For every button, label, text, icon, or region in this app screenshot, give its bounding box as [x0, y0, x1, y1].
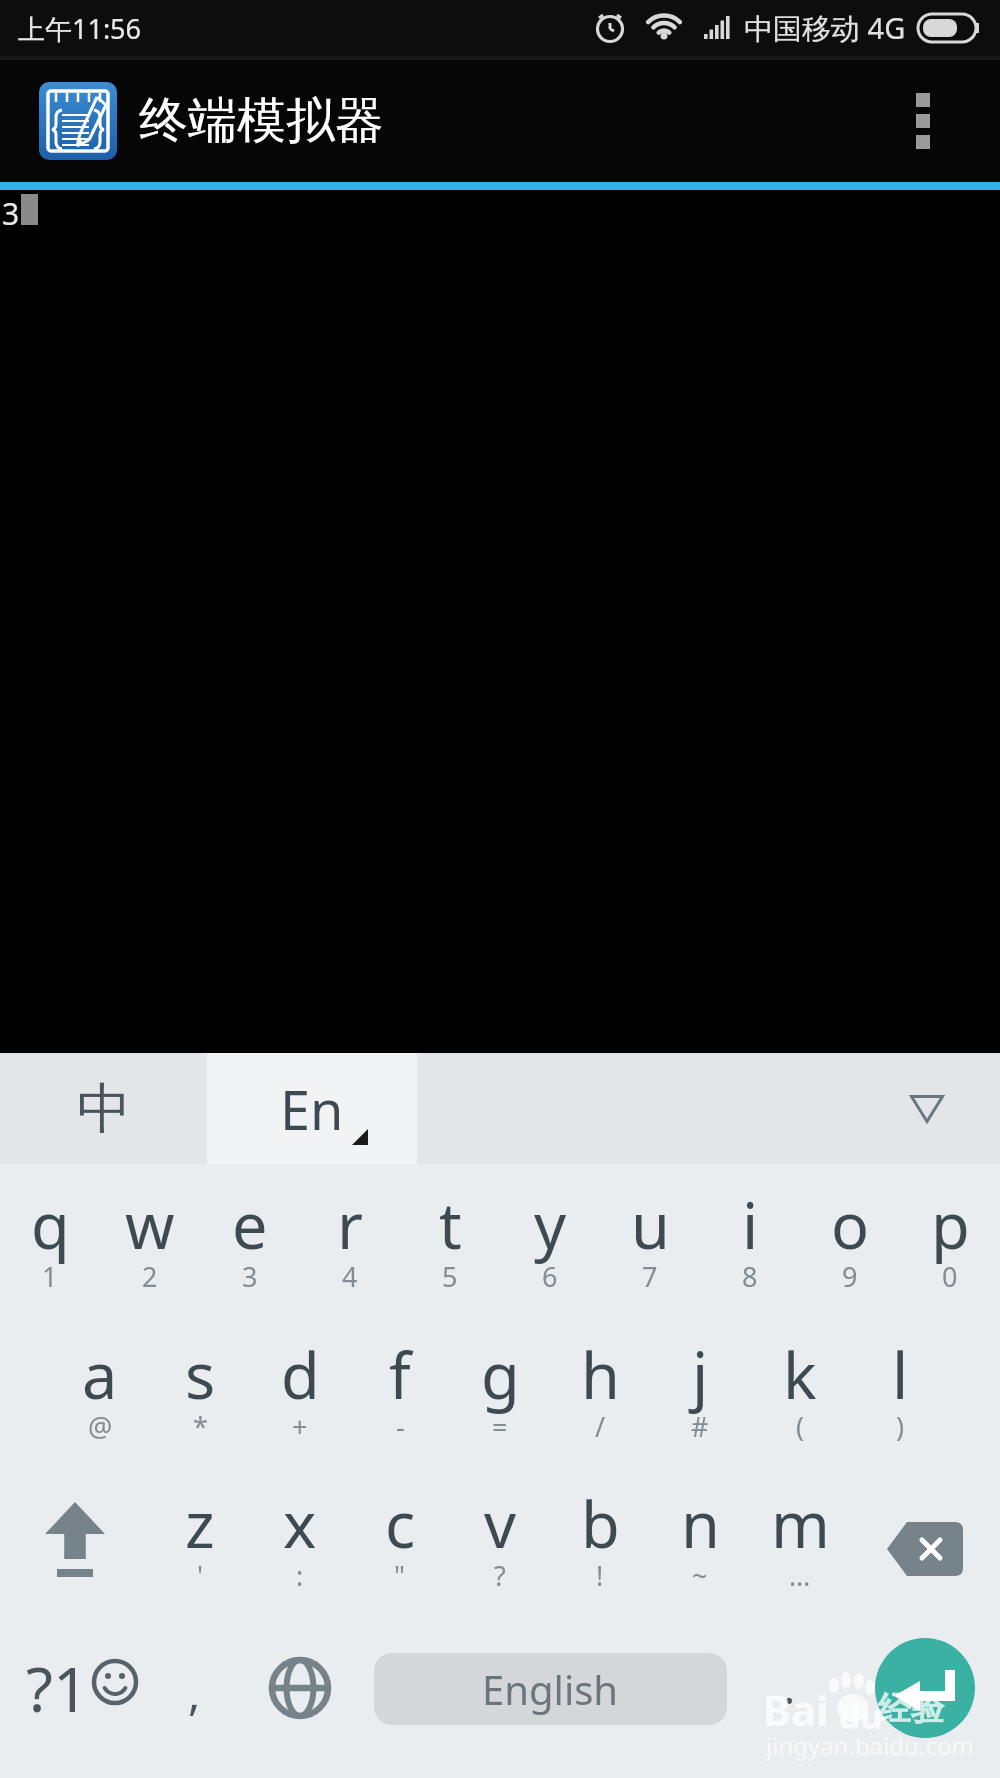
- staticText: j: [692, 1332, 709, 1418]
- staticText: jingyan.baidu.com: [766, 1729, 974, 1762]
- button[interactable]: y: [500, 1164, 600, 1320]
- button[interactable]: 中: [0, 1053, 207, 1164]
- staticText: !: [596, 1557, 604, 1594]
- staticText: d: [281, 1332, 320, 1418]
- staticText: 3: [242, 1258, 258, 1295]
- button[interactable]: .: [783, 1655, 796, 1718]
- button[interactable]: [270, 1658, 330, 1718]
- staticText: h: [581, 1332, 620, 1418]
- staticText: (: [796, 1408, 805, 1445]
- staticText: y: [534, 1182, 567, 1268]
- staticText: t: [439, 1182, 462, 1268]
- button[interactable]: m: [750, 1473, 850, 1625]
- staticText: #: [691, 1408, 709, 1445]
- button[interactable]: ?1: [26, 1646, 138, 1718]
- staticText: ): [896, 1408, 905, 1445]
- button[interactable]: ,: [188, 1661, 201, 1724]
- button[interactable]: f: [350, 1320, 450, 1473]
- button[interactable]: [916, 93, 930, 149]
- staticText: ~: [692, 1557, 708, 1594]
- staticText: z: [185, 1481, 215, 1567]
- button[interactable]: j: [650, 1320, 750, 1473]
- staticText: ?: [494, 1557, 506, 1594]
- staticText: 上午11:56: [18, 10, 142, 47]
- button[interactable]: u: [600, 1164, 700, 1320]
- button[interactable]: r: [300, 1164, 400, 1320]
- button[interactable]: [910, 1095, 944, 1123]
- button[interactable]: s: [150, 1320, 250, 1473]
- button[interactable]: k: [750, 1320, 850, 1473]
- staticText: 9: [842, 1258, 858, 1295]
- staticText: 4: [342, 1258, 358, 1295]
- staticText: /: [595, 1408, 606, 1445]
- button[interactable]: g: [450, 1320, 550, 1473]
- staticText: b: [581, 1481, 620, 1567]
- staticText: x: [283, 1481, 317, 1567]
- staticText: 7: [642, 1258, 658, 1295]
- staticText: *: [193, 1408, 208, 1445]
- staticText: c: [385, 1481, 416, 1567]
- staticText: l: [892, 1332, 909, 1418]
- button[interactable]: h: [550, 1320, 650, 1473]
- staticText: g: [481, 1332, 520, 1418]
- staticText: 3: [2, 193, 20, 234]
- staticText: a: [82, 1332, 118, 1418]
- button[interactable]: En: [207, 1053, 417, 1164]
- staticText: :: [296, 1557, 304, 1594]
- staticText: 8: [742, 1258, 758, 1295]
- button[interactable]: e: [200, 1164, 300, 1320]
- button[interactable]: b: [550, 1473, 650, 1625]
- button[interactable]: a: [50, 1320, 150, 1473]
- staticText: 2: [142, 1258, 158, 1295]
- button[interactable]: l: [850, 1320, 950, 1473]
- staticText: du: [839, 1693, 883, 1739]
- button[interactable]: w: [100, 1164, 200, 1320]
- button[interactable]: [850, 1473, 1000, 1625]
- staticText: q: [31, 1182, 70, 1268]
- staticText: +: [292, 1408, 308, 1445]
- staticText: English: [482, 1662, 619, 1716]
- staticText: 6: [542, 1258, 558, 1295]
- button[interactable]: q: [0, 1164, 100, 1320]
- button[interactable]: p: [900, 1164, 1000, 1320]
- button[interactable]: [875, 1638, 975, 1738]
- staticText: w: [125, 1182, 175, 1268]
- staticText: f: [389, 1332, 411, 1418]
- staticText: o: [831, 1182, 870, 1268]
- staticText: …: [789, 1557, 811, 1594]
- button[interactable]: n: [650, 1473, 750, 1625]
- staticText: i: [742, 1182, 759, 1268]
- staticText: 经验: [878, 1688, 944, 1730]
- staticText: u: [631, 1182, 670, 1268]
- staticText: n: [681, 1481, 720, 1567]
- button[interactable]: i: [700, 1164, 800, 1320]
- button[interactable]: English: [374, 1653, 727, 1725]
- button[interactable]: d: [250, 1320, 350, 1473]
- button[interactable]: v: [450, 1473, 550, 1625]
- button[interactable]: [0, 1473, 150, 1625]
- staticText: v: [484, 1481, 517, 1567]
- staticText: 终端模拟器: [139, 90, 384, 152]
- staticText: e: [232, 1182, 268, 1268]
- staticText: p: [931, 1182, 970, 1268]
- button[interactable]: [39, 82, 117, 160]
- staticText: 5: [442, 1258, 458, 1295]
- staticText: 中: [77, 1075, 131, 1143]
- staticText: 中国移动 4G: [744, 8, 906, 48]
- staticText: ': [197, 1557, 204, 1594]
- button[interactable]: x: [250, 1473, 350, 1625]
- button[interactable]: c: [350, 1473, 450, 1625]
- staticText: m: [771, 1481, 830, 1567]
- staticText: @: [88, 1408, 113, 1445]
- staticText: 0: [942, 1258, 958, 1295]
- staticText: ?1: [26, 1646, 89, 1718]
- button[interactable]: z: [150, 1473, 250, 1625]
- staticText: -: [396, 1408, 405, 1445]
- button[interactable]: t: [400, 1164, 500, 1320]
- staticText: k: [783, 1332, 817, 1418]
- staticText: =: [492, 1408, 508, 1445]
- staticText: s: [185, 1332, 216, 1418]
- staticText: ": [394, 1557, 406, 1594]
- staticText: Bai: [763, 1681, 829, 1738]
- button[interactable]: o: [800, 1164, 900, 1320]
